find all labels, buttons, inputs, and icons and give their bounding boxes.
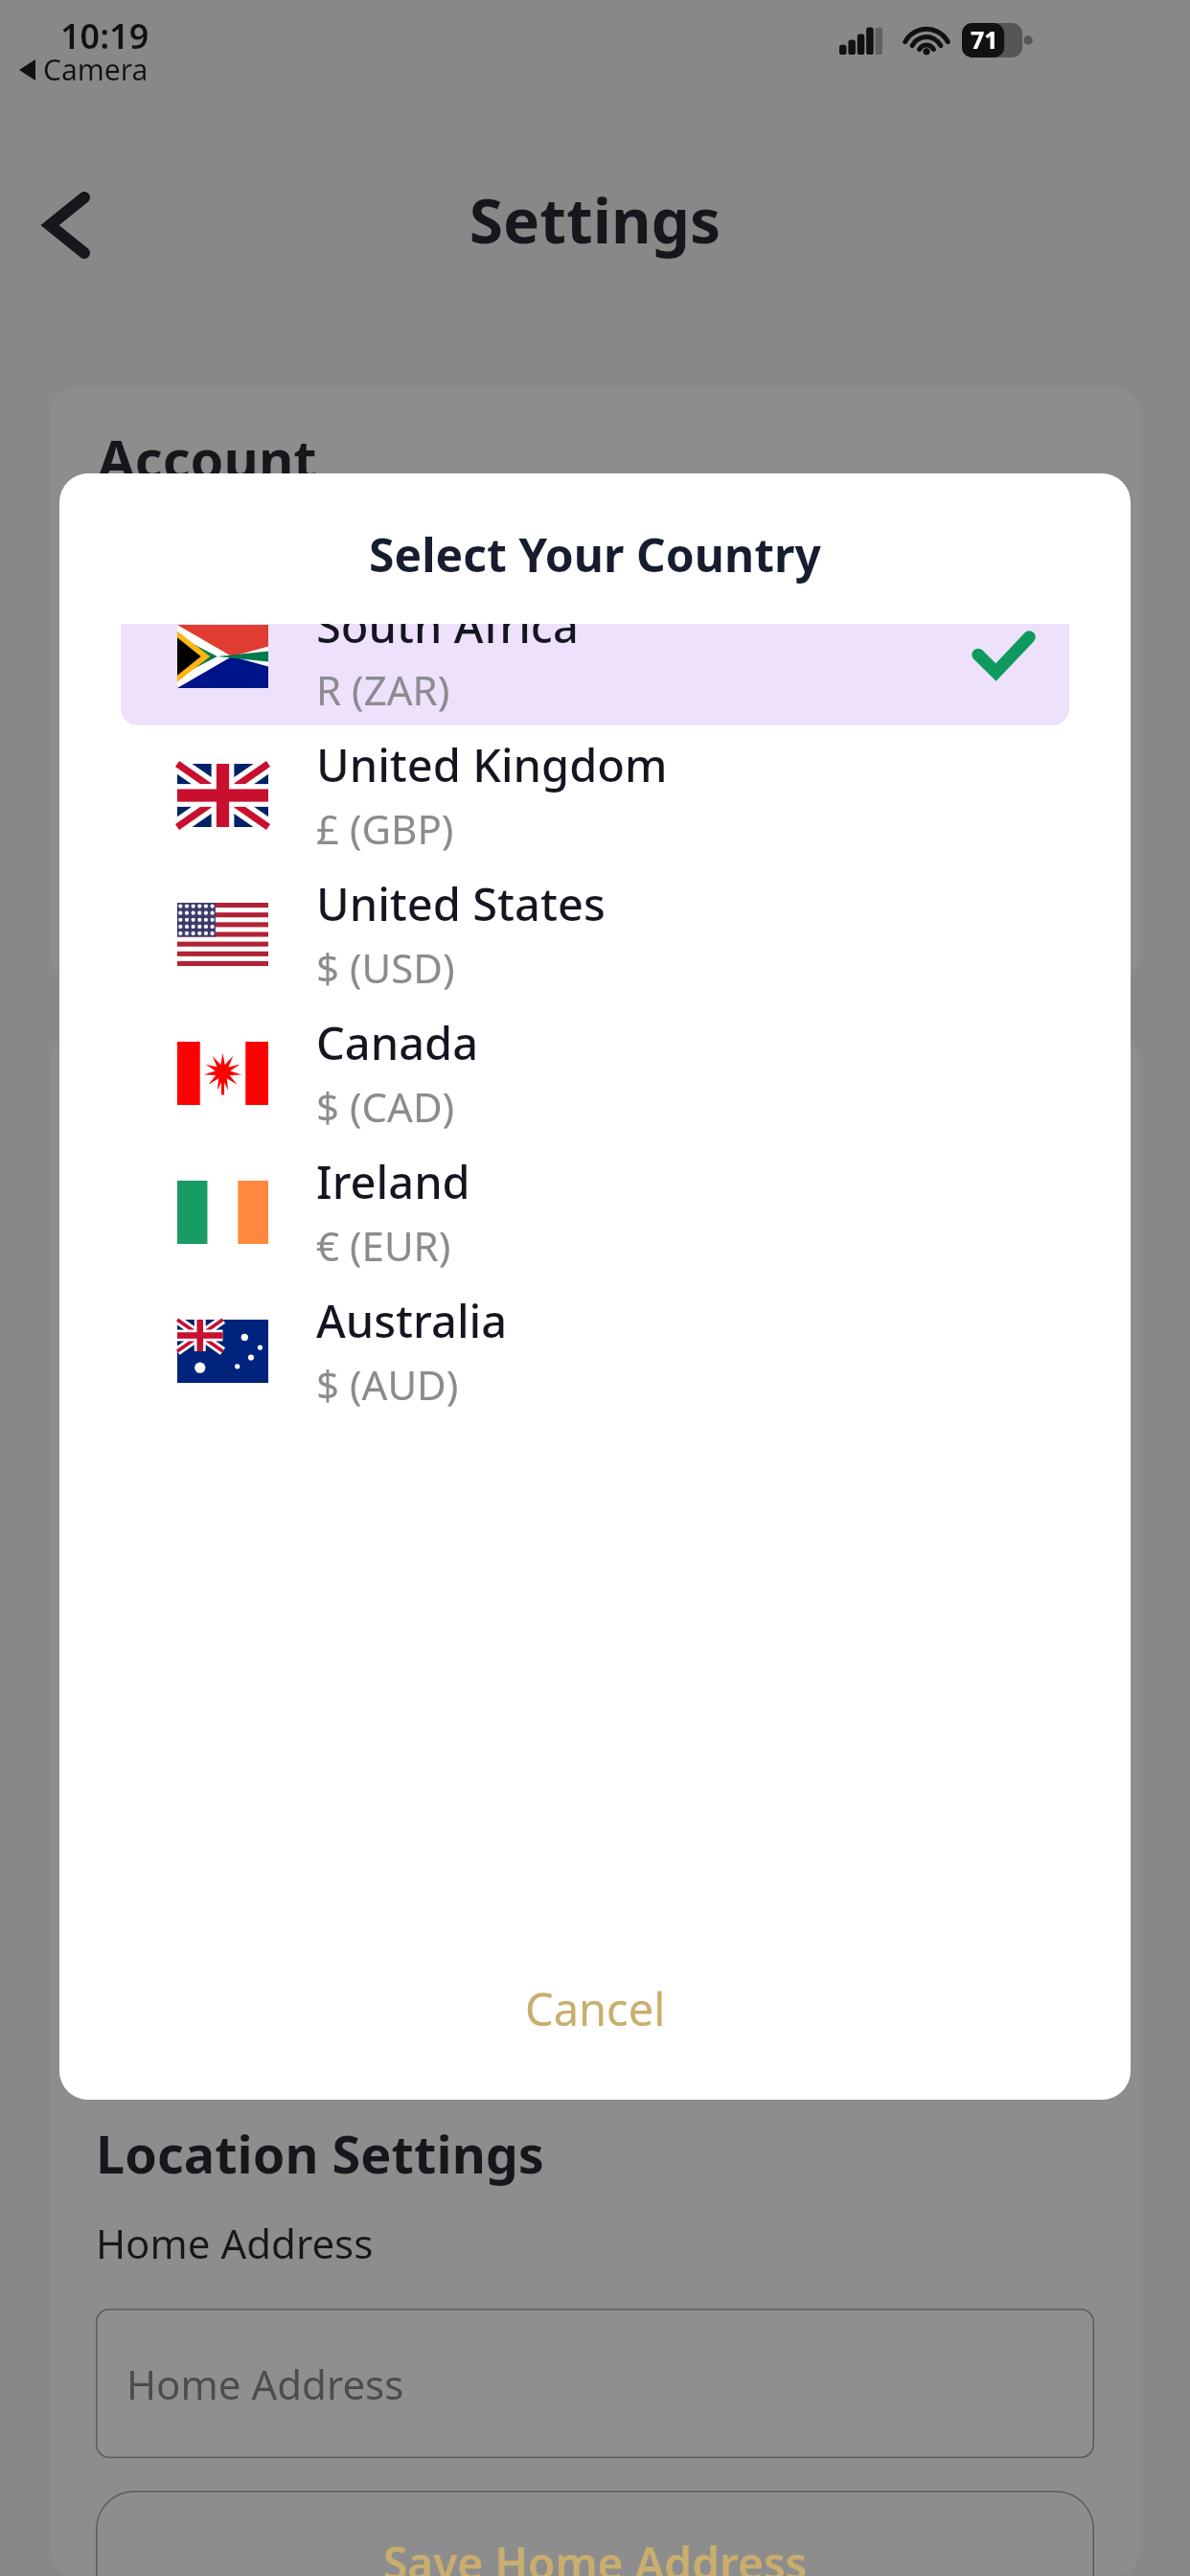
staticText: $ (USD)	[316, 940, 455, 995]
staticText: Australia	[316, 1290, 508, 1351]
staticText: Canada	[316, 1012, 479, 1073]
staticText: Cancel	[525, 1978, 666, 2039]
staticText: Camera	[43, 50, 149, 89]
staticText: Home Address	[126, 2357, 404, 2411]
button[interactable]: United Kingdom	[121, 725, 1069, 864]
button[interactable]: Canada	[121, 1003, 1069, 1142]
staticText: £ (GBP)	[316, 801, 454, 856]
staticText: Save Home Address	[383, 2533, 808, 2576]
staticText: Location Settings	[96, 2118, 544, 2189]
staticText: Home Address	[96, 2216, 374, 2270]
button[interactable]: Home Address	[96, 2309, 1094, 2458]
staticText: € (EUR)	[316, 1218, 451, 1273]
staticText: South Africa	[316, 624, 579, 656]
button[interactable]: Australia	[121, 1281, 1069, 1420]
button[interactable]: Ireland	[121, 1142, 1069, 1281]
staticText: $ (AUD)	[316, 1357, 459, 1412]
staticText: Ireland	[316, 1151, 470, 1212]
staticText: United States	[316, 873, 606, 934]
staticText: United Kingdom	[316, 734, 668, 795]
button[interactable]: Cancel	[59, 1918, 1131, 2100]
staticText: R (ZAR)	[316, 662, 450, 717]
button[interactable]: Save Home Address	[96, 2491, 1094, 2576]
staticText: Select Your Country	[59, 523, 1131, 586]
button[interactable]: Back	[19, 177, 115, 273]
staticText: Account	[98, 422, 317, 494]
button[interactable]: United States	[121, 864, 1069, 1003]
button[interactable]: South Africa	[121, 624, 1069, 725]
staticText: Settings	[0, 178, 1190, 262]
staticText: 71	[971, 23, 998, 56]
staticText: $ (CAD)	[316, 1079, 455, 1134]
staticText: 10:19	[60, 12, 149, 59]
